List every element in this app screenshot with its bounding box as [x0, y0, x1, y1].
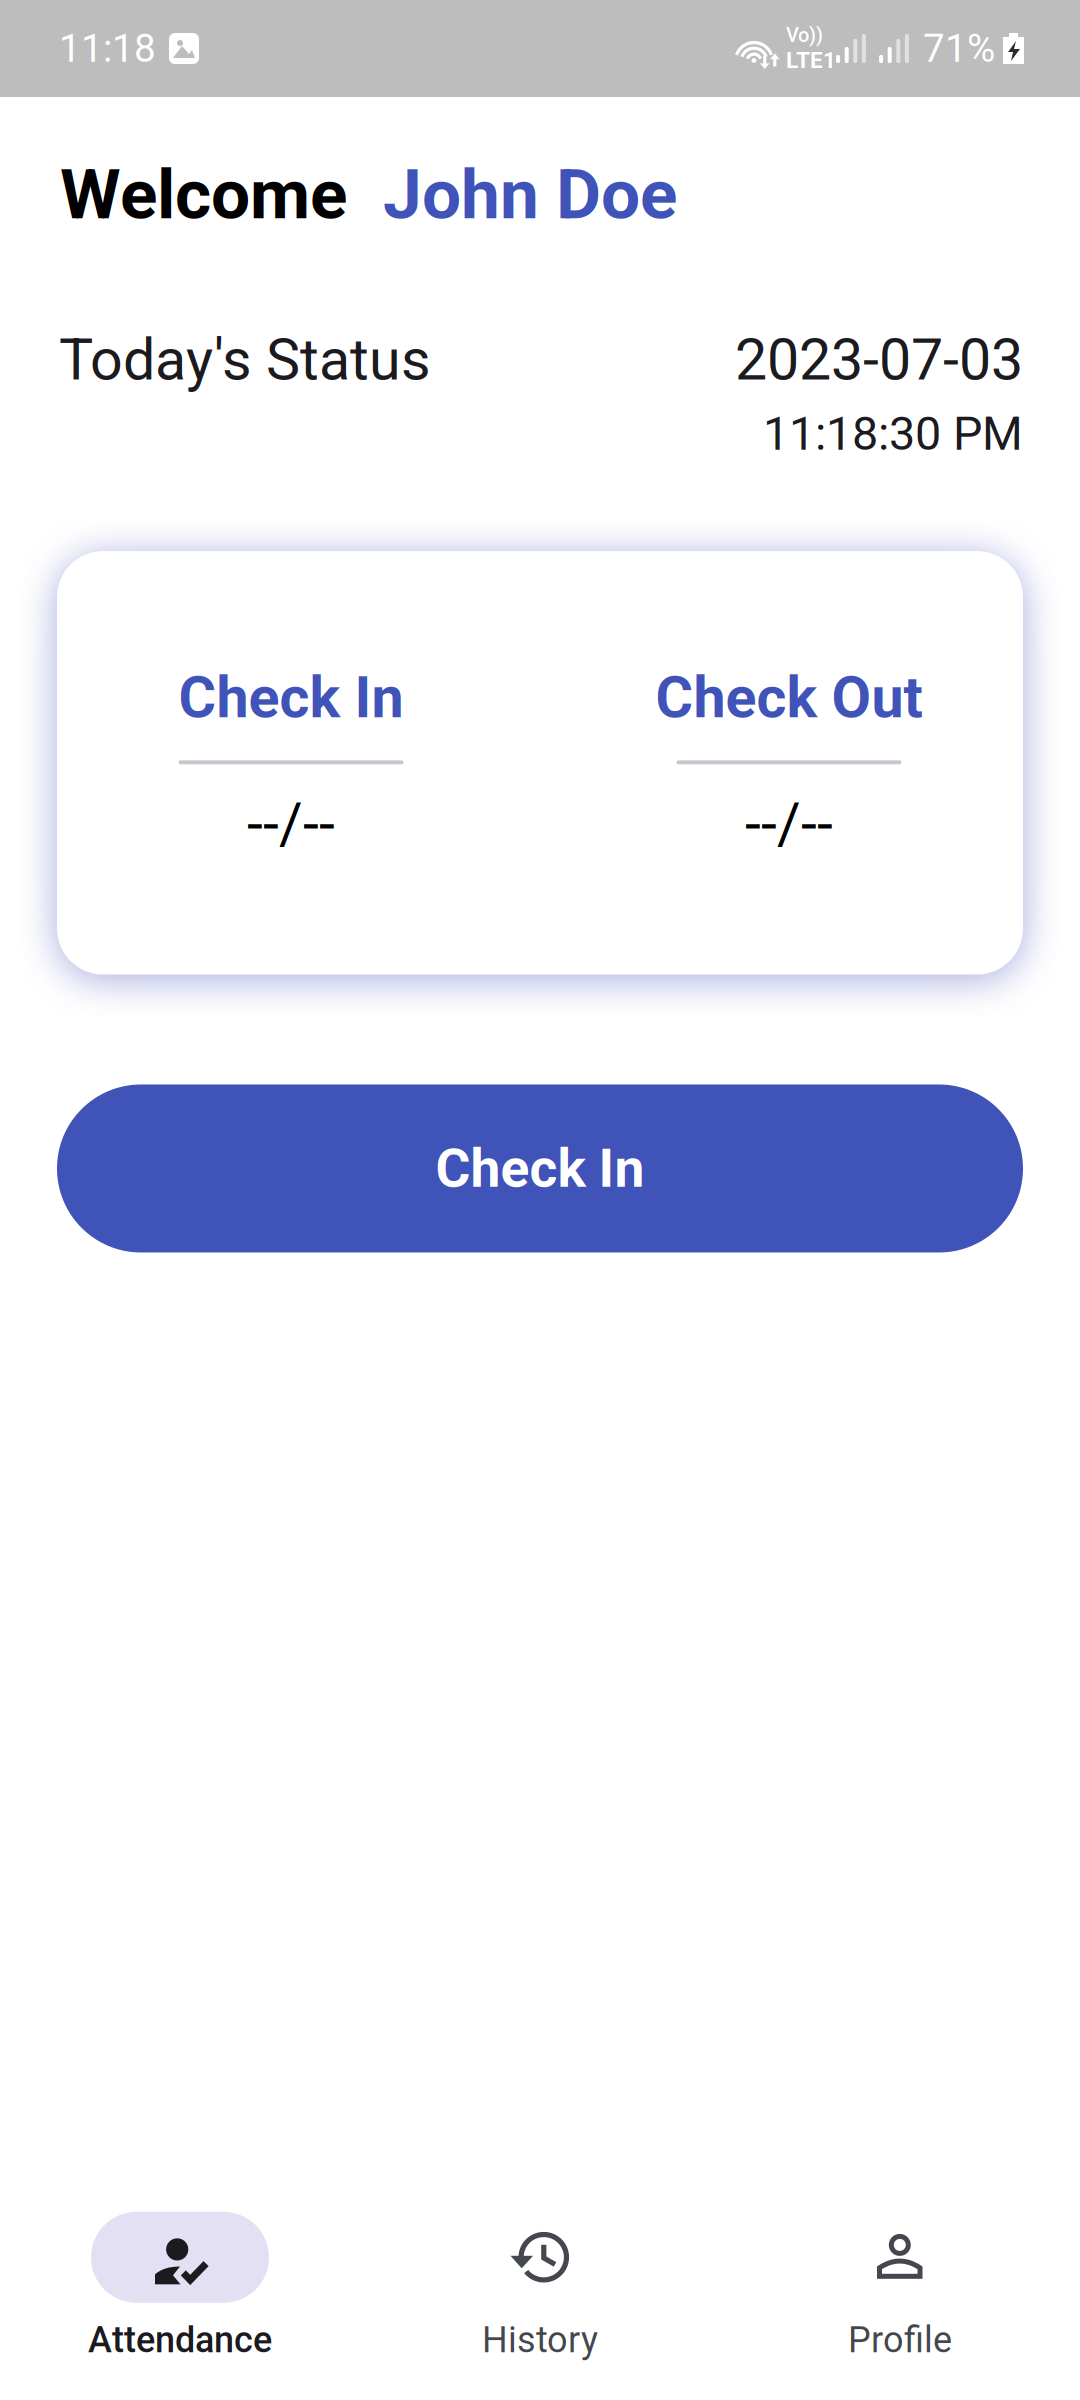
staticText: Attendance — [88, 2319, 272, 2361]
staticText: Welcome — [60, 154, 347, 235]
staticText: Vo)) — [786, 23, 823, 47]
staticText: --/-- — [247, 790, 335, 857]
staticText: LTE1 — [786, 47, 836, 73]
staticText: 71% — [923, 26, 995, 71]
staticText: 11:18:30 PM — [763, 406, 1023, 461]
staticText: History — [482, 2319, 598, 2361]
staticText: Check In — [435, 1137, 644, 1200]
staticText: John Doe — [383, 154, 677, 235]
staticText: Check Out — [655, 664, 922, 731]
staticText: Check In — [178, 664, 403, 731]
staticText: 2023-07-03 — [735, 326, 1023, 393]
staticText: Profile — [848, 2319, 952, 2361]
staticText: 11:18 — [59, 26, 156, 71]
button[interactable]: Check In — [57, 1084, 1023, 1252]
button[interactable]: History — [360, 2206, 720, 2400]
staticText: Today's Status — [59, 326, 431, 393]
staticText: --/-- — [745, 790, 833, 857]
button[interactable]: Attendance — [0, 2206, 360, 2400]
button[interactable]: Profile — [720, 2206, 1080, 2400]
